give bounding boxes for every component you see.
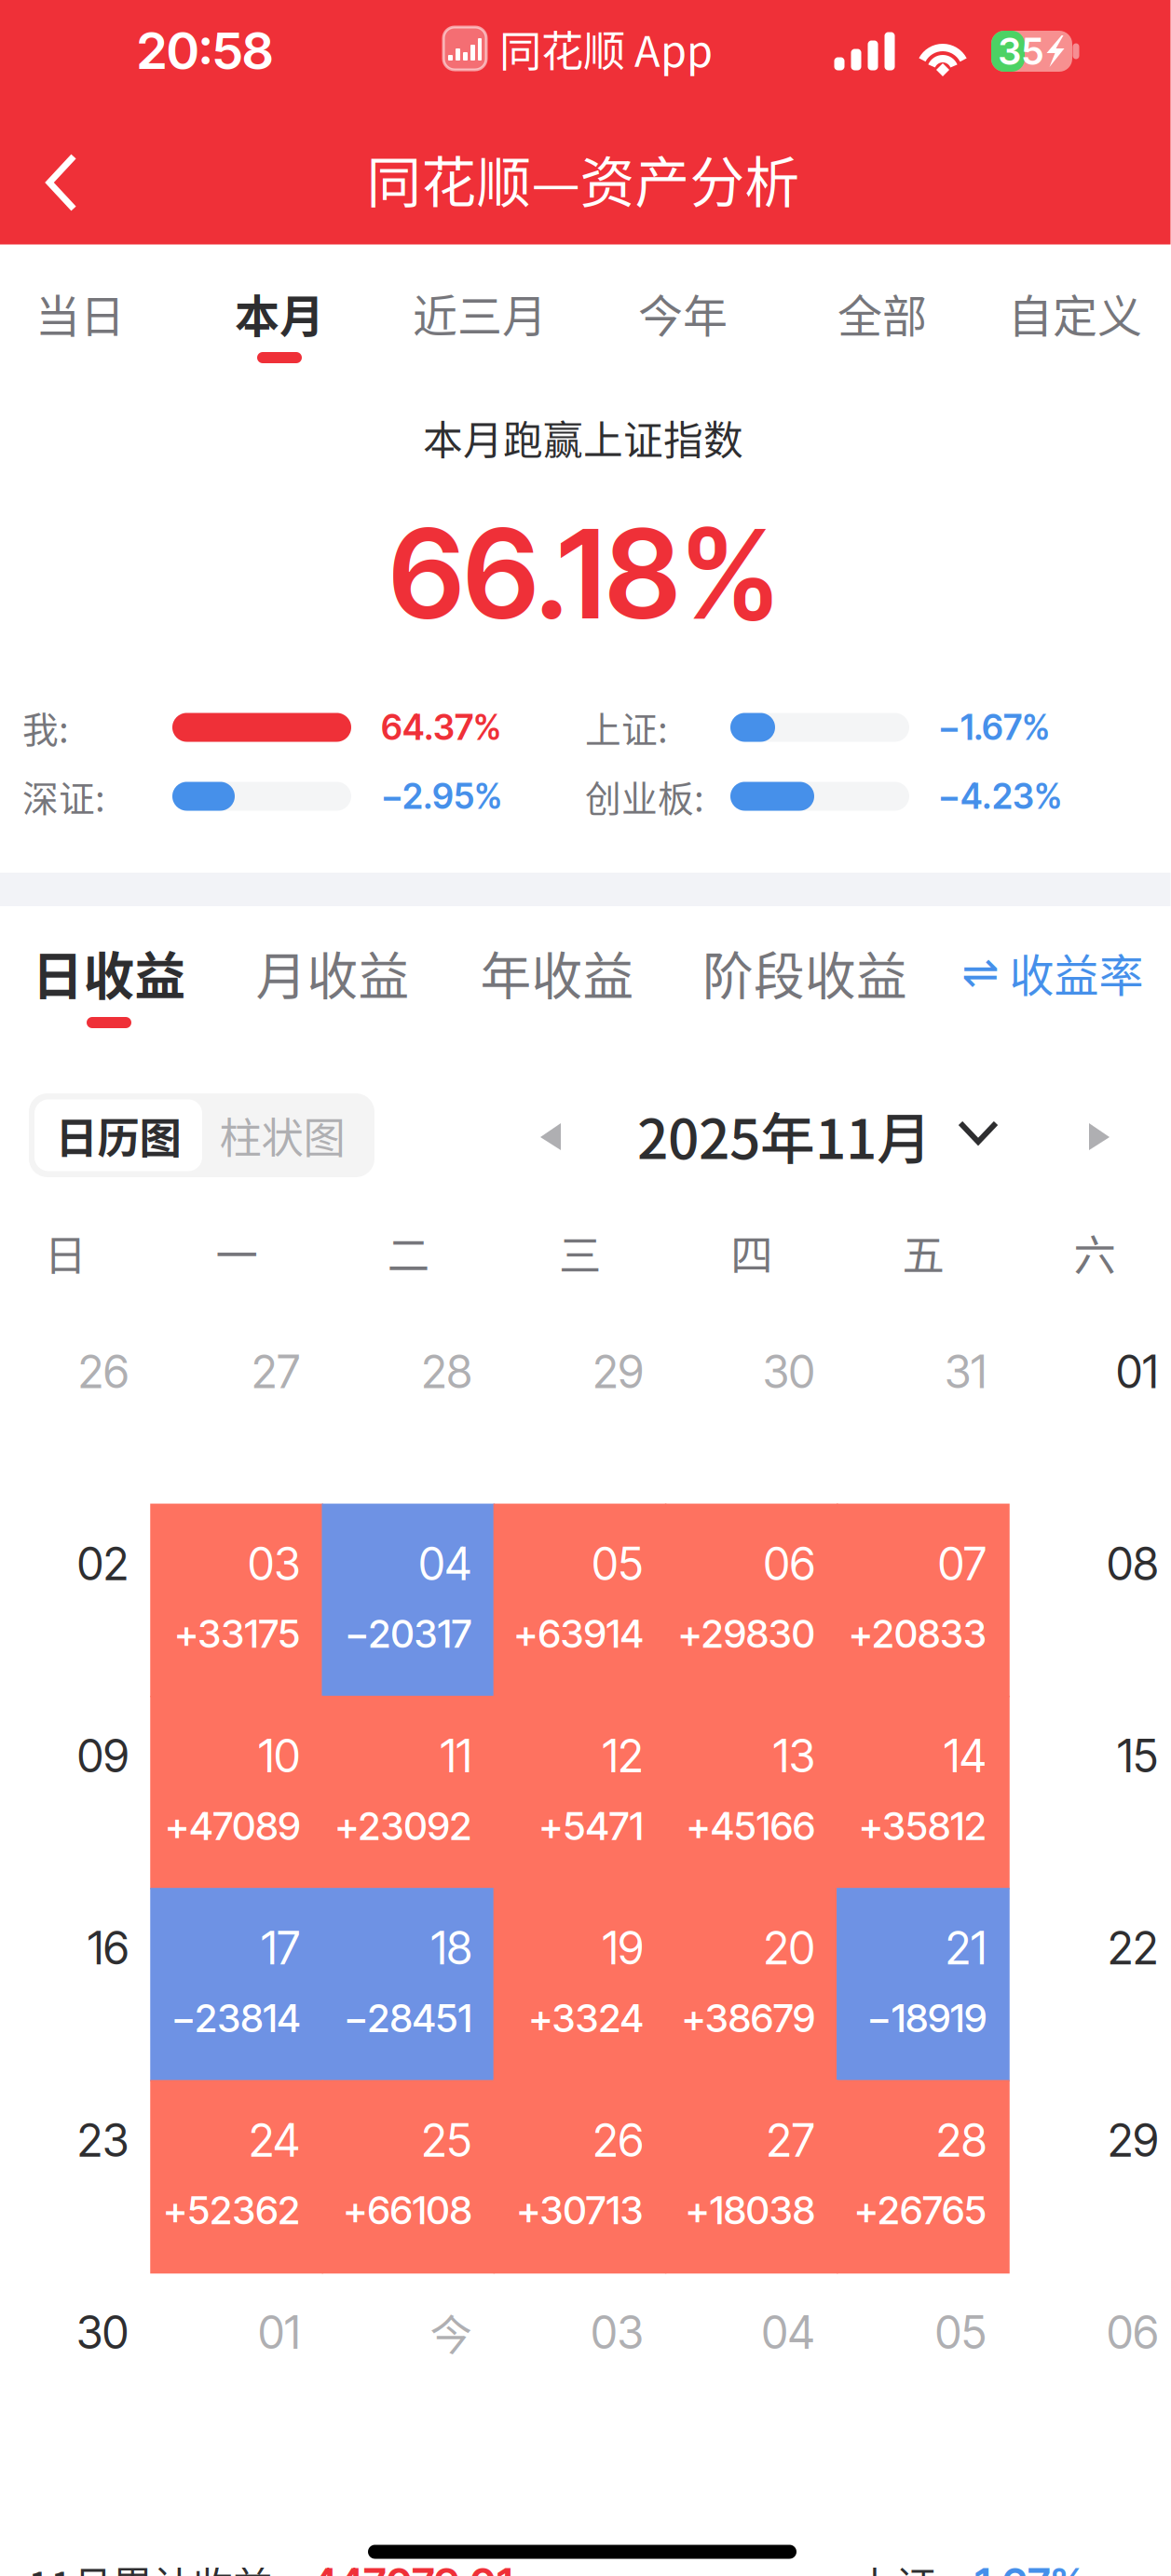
staticText: 02 bbox=[77, 1537, 129, 1591]
staticText: +45166 bbox=[686, 1803, 815, 1849]
staticText: 16 bbox=[88, 1921, 129, 1975]
button[interactable]: Previous month bbox=[540, 1123, 596, 1188]
staticText: 31 bbox=[945, 1345, 987, 1399]
staticText: 月收益 bbox=[256, 935, 409, 1009]
button[interactable]: 当日 bbox=[0, 259, 171, 367]
staticText: 20 bbox=[764, 1921, 815, 1975]
button[interactable]: Choose month bbox=[959, 1119, 1016, 1177]
staticText: 25 bbox=[421, 2113, 472, 2167]
staticText: 全部 bbox=[837, 281, 927, 345]
staticText: 08 bbox=[1107, 1537, 1158, 1591]
staticText: 27 bbox=[252, 1345, 300, 1399]
staticText: 35 bbox=[998, 29, 1044, 74]
button[interactable]: 今年 bbox=[592, 259, 774, 367]
staticText: ⇌ bbox=[962, 946, 999, 998]
staticText: +63914 bbox=[514, 1611, 643, 1657]
button[interactable]: 年收益 bbox=[480, 924, 634, 1021]
staticText: 28 bbox=[421, 1345, 472, 1399]
staticText: −20317 bbox=[345, 1611, 472, 1657]
staticText: −1.67% bbox=[938, 706, 1050, 748]
staticText: +20833 bbox=[849, 1611, 987, 1657]
staticText: 今年 bbox=[638, 281, 728, 345]
staticText: +38679 bbox=[682, 1995, 815, 2041]
staticText: +52362 bbox=[163, 2187, 300, 2233]
button[interactable]: 自定义 bbox=[984, 259, 1166, 367]
staticText: +18038 bbox=[685, 2187, 815, 2233]
staticText: 06 bbox=[764, 1537, 815, 1591]
staticText: 17 bbox=[261, 1921, 300, 1975]
staticText: +35812 bbox=[859, 1803, 987, 1849]
staticText: 26 bbox=[78, 1345, 129, 1399]
staticText: 05 bbox=[592, 1537, 643, 1591]
staticText: +3324 bbox=[529, 1995, 643, 2041]
staticText: +29830 bbox=[678, 1611, 815, 1657]
staticText: 日历图 bbox=[55, 1105, 181, 1166]
staticText: +47089 bbox=[165, 1803, 300, 1849]
staticText: 同花顺—资产分析 bbox=[367, 139, 800, 218]
staticText: 今 bbox=[430, 2302, 472, 2363]
staticText: 14 bbox=[944, 1729, 987, 1783]
staticText: 27 bbox=[767, 2113, 815, 2167]
staticText: 29 bbox=[1108, 2113, 1158, 2167]
staticText: +30713 bbox=[517, 2187, 643, 2233]
staticText: 创业板: bbox=[585, 770, 704, 822]
staticText: −23814 bbox=[172, 1995, 300, 2041]
button[interactable]: ⇌ bbox=[962, 930, 1144, 1014]
staticText: 本月跑赢上证指数 bbox=[423, 409, 743, 466]
staticText: 20:58 bbox=[137, 19, 273, 81]
staticText: 11月累计收益: bbox=[28, 2555, 284, 2576]
staticText: +447079.01 bbox=[284, 2558, 512, 2576]
button[interactable]: 近三月 bbox=[388, 259, 571, 367]
button[interactable]: Next month bbox=[1089, 1123, 1145, 1188]
staticText: 深证: bbox=[22, 770, 105, 822]
staticText: 64.37% bbox=[381, 706, 501, 748]
staticText: 2025年11月 bbox=[637, 1096, 932, 1175]
staticText: +5471 bbox=[539, 1803, 643, 1849]
staticText: 日 bbox=[44, 1222, 86, 1283]
staticText: 28 bbox=[936, 2113, 987, 2167]
button[interactable]: 柱状图 bbox=[198, 1093, 366, 1177]
staticText: 04 bbox=[419, 1537, 472, 1591]
staticText: 09 bbox=[77, 1729, 129, 1783]
staticText: 15 bbox=[1117, 1729, 1158, 1783]
staticText: 26 bbox=[593, 2113, 643, 2167]
staticText: 当日 bbox=[35, 281, 125, 345]
staticText: 一 bbox=[216, 1222, 258, 1283]
staticText: 日收益 bbox=[32, 935, 186, 1009]
staticText: 10 bbox=[258, 1729, 300, 1783]
staticText: 01 bbox=[1116, 1345, 1158, 1399]
staticText: 六 bbox=[1074, 1222, 1116, 1283]
staticText: 本月 bbox=[235, 281, 324, 345]
button[interactable]: 日收益 bbox=[32, 924, 186, 1021]
staticText: 上证: bbox=[585, 701, 668, 753]
staticText: 近三月 bbox=[413, 281, 547, 345]
staticText: 收益率 bbox=[1009, 940, 1144, 1005]
staticText: 三 bbox=[559, 1222, 601, 1283]
staticText: 五 bbox=[902, 1222, 944, 1283]
staticText: 05 bbox=[935, 2305, 987, 2360]
staticText: 二 bbox=[387, 1222, 429, 1283]
staticText: 06 bbox=[1107, 2305, 1158, 2360]
staticText: −2.95% bbox=[381, 775, 502, 817]
staticText: 自定义 bbox=[1008, 281, 1142, 345]
staticText: 04 bbox=[762, 2305, 815, 2360]
staticText: 03 bbox=[591, 2305, 643, 2360]
button[interactable]: 阶段收益 bbox=[702, 924, 907, 1021]
staticText: 阶段收益 bbox=[702, 935, 907, 1009]
staticText: −1.67% bbox=[947, 2558, 1084, 2576]
staticText: 我: bbox=[22, 701, 69, 753]
staticText: 24 bbox=[249, 2113, 300, 2167]
staticText: 上证: bbox=[856, 2555, 947, 2576]
staticText: −28451 bbox=[344, 1995, 472, 2041]
button[interactable]: 日历图 bbox=[34, 1093, 202, 1177]
button[interactable]: 本月 bbox=[188, 259, 371, 367]
staticText: 23 bbox=[77, 2113, 129, 2167]
button[interactable]: Back bbox=[11, 132, 112, 233]
button[interactable]: 月收益 bbox=[256, 924, 409, 1021]
staticText: +23092 bbox=[335, 1803, 472, 1849]
staticText: 同花顺 App bbox=[499, 18, 713, 79]
staticText: 01 bbox=[258, 2305, 300, 2360]
staticText: 12 bbox=[602, 1729, 643, 1783]
button[interactable]: 全部 bbox=[791, 259, 974, 367]
staticText: +26765 bbox=[854, 2187, 987, 2233]
